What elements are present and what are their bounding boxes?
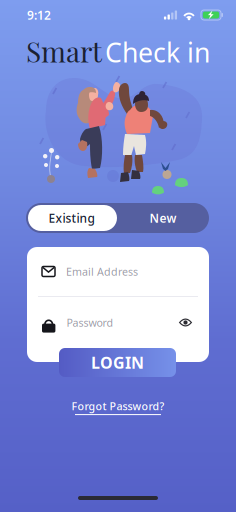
- staticText: Password: [66, 315, 113, 330]
- staticText: Existing: [48, 210, 94, 226]
- staticText: Smart: [26, 32, 102, 69]
- staticText: LOGIN: [91, 352, 144, 373]
- staticText: New: [149, 210, 176, 226]
- staticText: Check in: [105, 34, 210, 70]
- staticText: Forgot Password?: [71, 399, 164, 413]
- staticText: Email Address: [66, 264, 138, 279]
- button[interactable]: LOGIN: [59, 348, 176, 377]
- button[interactable]: Forgot Password?: [70, 399, 166, 415]
- staticText: 9:12: [27, 7, 51, 23]
- button[interactable]: New: [117, 203, 209, 233]
- button[interactable]: Existing: [26, 203, 117, 233]
- button[interactable]: Show password: [176, 315, 195, 330]
